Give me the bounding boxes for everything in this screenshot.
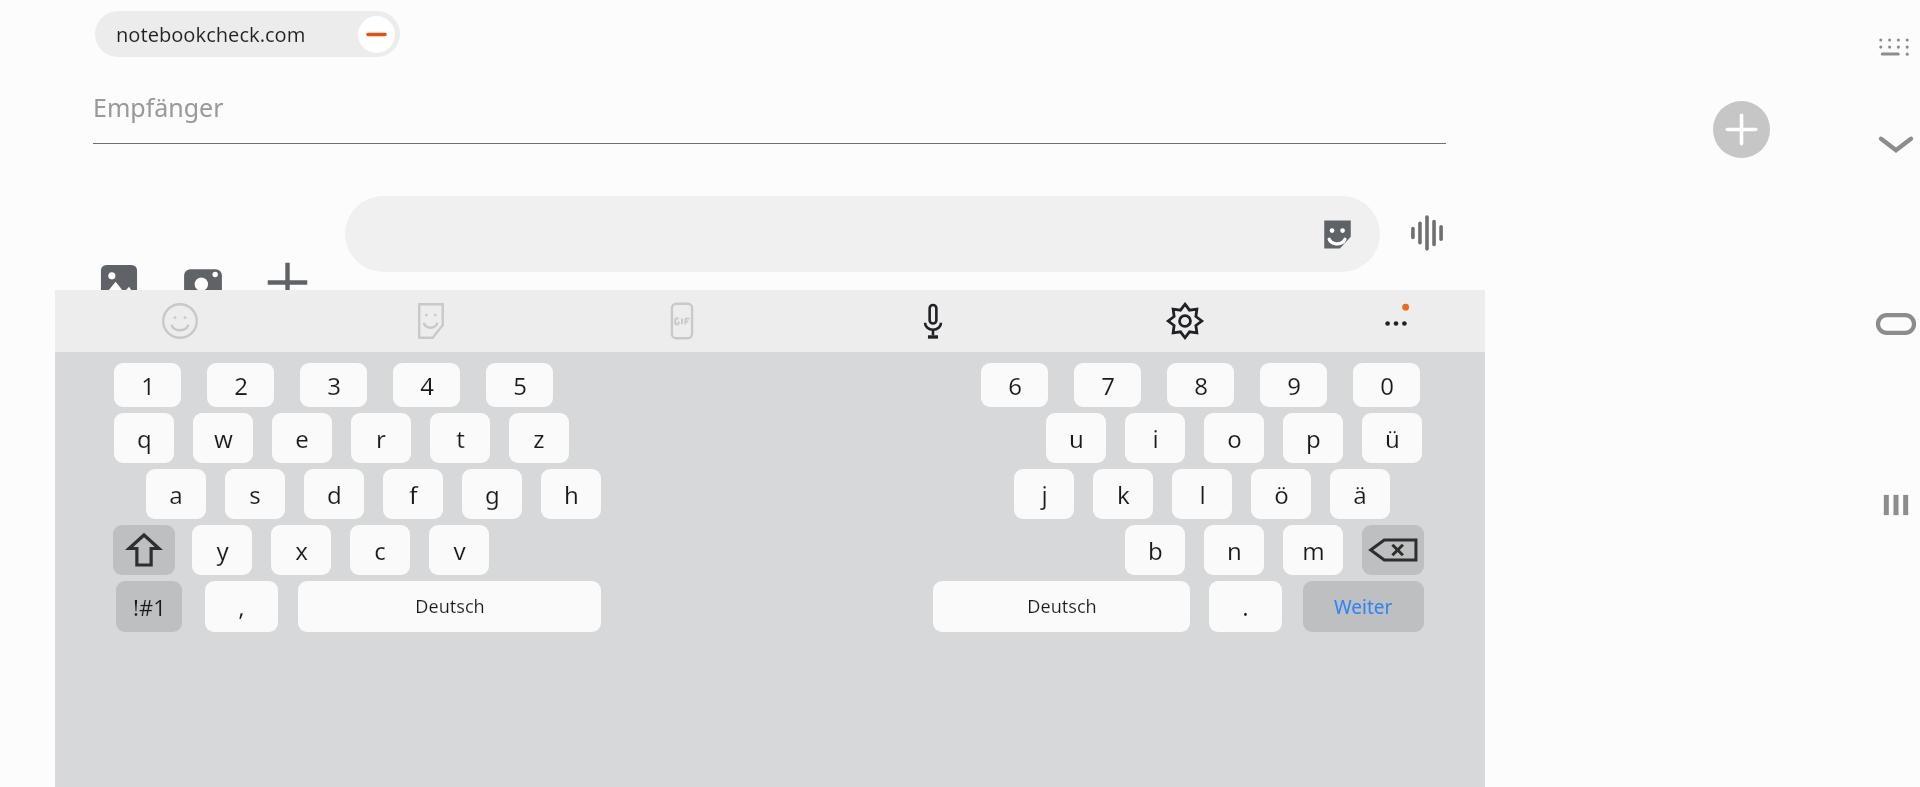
button[interactable]: Sticker xyxy=(1318,215,1357,254)
button[interactable]: d xyxy=(304,469,364,519)
button[interactable]: GIF xyxy=(661,300,703,342)
staticText: !#1 xyxy=(133,592,166,622)
staticText: 1 xyxy=(141,369,155,402)
button[interactable]: z xyxy=(509,413,569,463)
staticText: b xyxy=(1148,534,1163,567)
button[interactable]: q xyxy=(114,413,174,463)
staticText: Empfänger xyxy=(93,90,224,124)
staticText: d xyxy=(327,478,342,511)
button[interactable]: 5 xyxy=(486,363,553,407)
button[interactable]: 7 xyxy=(1074,363,1141,407)
staticText: p xyxy=(1306,422,1321,455)
staticText: 6 xyxy=(1008,369,1022,402)
button[interactable]: Hide keyboard xyxy=(1872,26,1916,70)
staticText: i xyxy=(1152,422,1159,455)
button[interactable]: x xyxy=(271,525,331,575)
button[interactable]: , xyxy=(205,581,278,632)
button[interactable]: Camera xyxy=(182,262,224,304)
button[interactable]: j xyxy=(1014,469,1074,519)
staticText: h xyxy=(564,478,579,511)
button[interactable]: ü xyxy=(1362,413,1422,463)
button[interactable]: l xyxy=(1172,469,1232,519)
button[interactable]: h xyxy=(541,469,601,519)
button[interactable]: p xyxy=(1283,413,1343,463)
button[interactable]: Shift xyxy=(113,525,175,575)
staticText: Deutsch xyxy=(415,594,485,619)
button[interactable]: f xyxy=(383,469,443,519)
button[interactable]: t xyxy=(430,413,490,463)
staticText: . xyxy=(1242,590,1249,623)
button[interactable]: Backspace xyxy=(1362,525,1424,575)
button[interactable]: Add recipient xyxy=(1713,101,1770,158)
button[interactable]: 3 xyxy=(300,363,367,407)
button[interactable]: v xyxy=(429,525,489,575)
button[interactable]: Keyboard settings xyxy=(1164,300,1206,342)
button[interactable]: Back xyxy=(1874,122,1918,166)
button[interactable]: k xyxy=(1093,469,1153,519)
button[interactable]: 6 xyxy=(981,363,1048,407)
staticText: t xyxy=(456,422,465,455)
button[interactable]: g xyxy=(462,469,522,519)
staticText: v xyxy=(453,534,466,567)
button[interactable]: 2 xyxy=(207,363,274,407)
staticText: Weiter xyxy=(1334,594,1393,620)
staticText: 7 xyxy=(1101,369,1115,402)
button[interactable]: Weiter xyxy=(1303,581,1424,632)
staticText: ä xyxy=(1353,478,1367,511)
staticText: 2 xyxy=(234,369,248,402)
button[interactable]: e xyxy=(272,413,332,463)
button[interactable]: u xyxy=(1046,413,1106,463)
button[interactable]: 8 xyxy=(1167,363,1234,407)
staticText: Deutsch xyxy=(1027,594,1097,619)
staticText: ö xyxy=(1274,478,1289,511)
staticText: e xyxy=(295,422,309,455)
button[interactable]: b xyxy=(1125,525,1185,575)
button[interactable]: More attachments xyxy=(264,259,311,306)
button[interactable]: c xyxy=(350,525,410,575)
button[interactable]: ö xyxy=(1251,469,1311,519)
staticText: k xyxy=(1117,478,1130,511)
button[interactable]: 1 xyxy=(114,363,181,407)
button[interactable]: Emoji xyxy=(159,300,201,342)
button[interactable]: o xyxy=(1204,413,1264,463)
button[interactable]: w xyxy=(193,413,253,463)
staticText: a xyxy=(169,478,183,511)
button[interactable]: a xyxy=(146,469,206,519)
button[interactable]: y xyxy=(192,525,252,575)
button[interactable]: Deutsch xyxy=(933,581,1190,632)
staticText: ü xyxy=(1385,422,1400,455)
button[interactable]: Voice message xyxy=(1405,211,1449,255)
button[interactable]: notebookcheck.com xyxy=(95,11,400,57)
button[interactable]: r xyxy=(351,413,411,463)
button[interactable]: . xyxy=(1209,581,1282,632)
staticText: , xyxy=(238,590,245,623)
staticText: f xyxy=(409,478,418,511)
button[interactable]: 9 xyxy=(1260,363,1327,407)
button[interactable]: ä xyxy=(1330,469,1390,519)
staticText: j xyxy=(1041,478,1048,511)
staticText: r xyxy=(376,422,386,455)
button[interactable]: 4 xyxy=(393,363,460,407)
button[interactable]: Remove recipient xyxy=(358,16,395,53)
button[interactable]: Voice input xyxy=(912,300,954,342)
button[interactable]: Recent apps xyxy=(1874,483,1918,527)
staticText: m xyxy=(1302,534,1325,567)
button[interactable]: Home xyxy=(1874,302,1918,346)
button[interactable]: Deutsch xyxy=(298,581,601,632)
staticText: y xyxy=(216,534,229,567)
staticText: 9 xyxy=(1287,369,1301,402)
button[interactable]: Stickers xyxy=(410,300,452,342)
button[interactable]: !#1 xyxy=(116,581,182,632)
button[interactable]: More xyxy=(1375,300,1417,342)
button[interactable]: Sticker xyxy=(345,196,1380,272)
staticText: w xyxy=(214,422,233,455)
button[interactable]: i xyxy=(1125,413,1185,463)
staticText: 0 xyxy=(1380,369,1394,402)
staticText: x xyxy=(295,534,308,567)
button[interactable]: n xyxy=(1204,525,1264,575)
button[interactable]: s xyxy=(225,469,285,519)
button[interactable]: 0 xyxy=(1353,363,1420,407)
staticText: 4 xyxy=(420,369,434,402)
button[interactable]: m xyxy=(1283,525,1343,575)
button[interactable]: Gallery xyxy=(98,262,140,304)
